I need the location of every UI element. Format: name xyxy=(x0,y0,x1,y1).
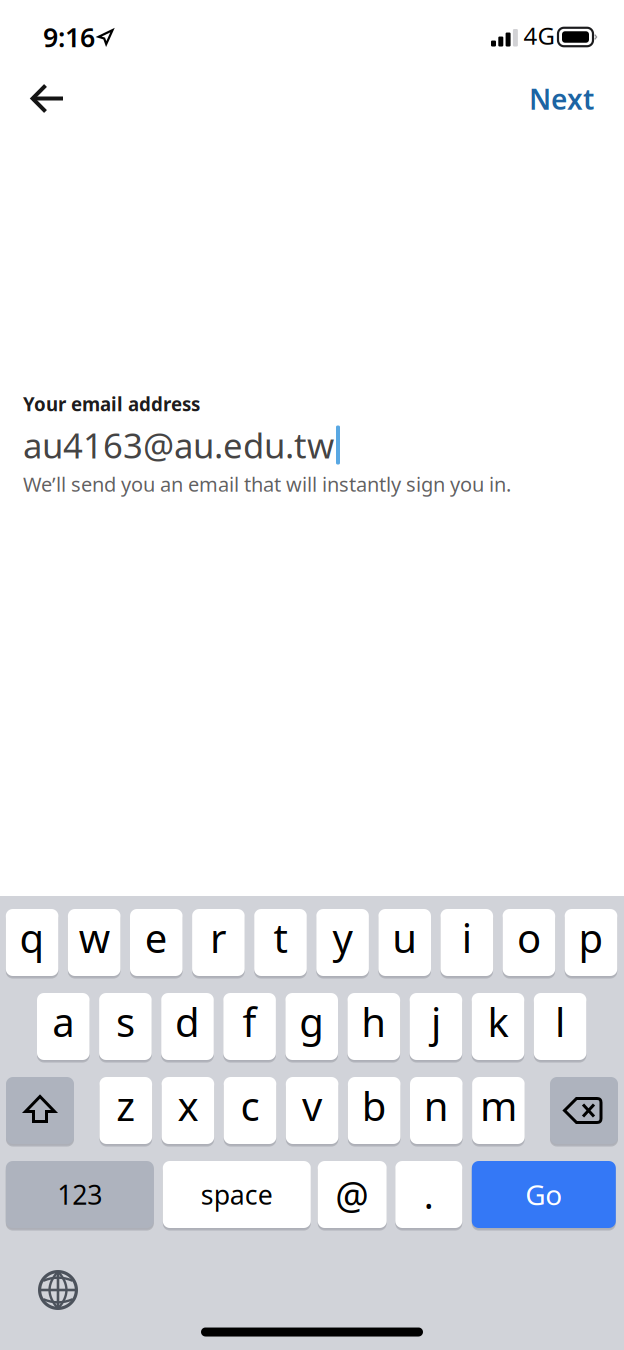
button[interactable]: k xyxy=(472,993,524,1060)
staticText: Go xyxy=(525,1176,562,1213)
staticText: b xyxy=(362,1079,387,1132)
staticText: @ xyxy=(335,1170,369,1219)
button[interactable]: s xyxy=(99,993,152,1060)
staticText: c xyxy=(240,1079,259,1132)
button[interactable]: Go xyxy=(472,1161,616,1228)
staticText: f xyxy=(243,995,257,1048)
staticText: z xyxy=(116,1079,135,1132)
staticText: t xyxy=(273,911,287,964)
staticText: Your email address xyxy=(23,392,200,416)
staticText: 9:16 xyxy=(43,19,95,55)
staticText: au4163@au.edu.tw xyxy=(23,422,334,468)
button[interactable]: Delete xyxy=(550,1077,618,1144)
staticText: k xyxy=(487,995,508,1048)
staticText: r xyxy=(210,911,227,964)
staticText: q xyxy=(20,911,45,964)
button[interactable]: . xyxy=(395,1161,462,1228)
staticText: Next xyxy=(529,80,594,118)
staticText: e xyxy=(145,911,168,964)
staticText: a xyxy=(52,995,74,1048)
button[interactable]: e xyxy=(130,909,183,976)
button[interactable]: i xyxy=(440,909,493,976)
button[interactable]: @ xyxy=(318,1161,387,1228)
staticText: d xyxy=(175,995,200,1048)
button[interactable]: 123 xyxy=(6,1161,154,1228)
staticText: . xyxy=(424,1170,434,1219)
button[interactable]: j xyxy=(410,993,462,1060)
staticText: i xyxy=(462,911,472,964)
button[interactable]: p xyxy=(565,909,617,976)
staticText: 123 xyxy=(57,1177,102,1212)
staticText: v xyxy=(302,1079,322,1132)
button[interactable]: b xyxy=(348,1077,400,1144)
staticText: l xyxy=(555,995,565,1048)
button[interactable]: space xyxy=(163,1161,311,1228)
staticText: j xyxy=(431,995,441,1048)
button[interactable]: Next xyxy=(474,73,594,125)
button[interactable]: g xyxy=(285,993,338,1060)
button[interactable]: t xyxy=(254,909,307,976)
staticText: o xyxy=(517,911,541,964)
staticText: m xyxy=(480,1079,517,1132)
button[interactable]: x xyxy=(162,1077,214,1144)
button[interactable]: u xyxy=(378,909,431,976)
staticText: n xyxy=(424,1079,449,1132)
button[interactable]: Shift xyxy=(6,1077,74,1144)
button[interactable]: d xyxy=(161,993,214,1060)
staticText: h xyxy=(361,995,386,1048)
button[interactable]: a xyxy=(37,993,90,1060)
button[interactable]: w xyxy=(68,909,120,976)
button[interactable]: Back xyxy=(13,70,83,126)
button[interactable]: o xyxy=(503,909,555,976)
staticText: space xyxy=(201,1177,273,1212)
button[interactable]: y xyxy=(316,909,369,976)
button[interactable]: m xyxy=(472,1077,525,1144)
button[interactable]: z xyxy=(99,1077,152,1144)
staticText: w xyxy=(79,911,110,964)
staticText: s xyxy=(116,995,135,1048)
staticText: g xyxy=(299,995,324,1048)
staticText: x xyxy=(177,1079,198,1132)
staticText: p xyxy=(578,911,603,964)
button[interactable]: n xyxy=(410,1077,463,1144)
staticText: y xyxy=(333,911,353,964)
button[interactable]: c xyxy=(224,1077,276,1144)
button[interactable]: v xyxy=(286,1077,338,1144)
button[interactable]: q xyxy=(6,909,58,976)
button[interactable]: Next keyboard xyxy=(30,1262,86,1318)
button[interactable]: r xyxy=(192,909,245,976)
button[interactable]: h xyxy=(347,993,400,1060)
button[interactable]: l xyxy=(534,993,586,1060)
staticText: u xyxy=(392,911,417,964)
button[interactable]: f xyxy=(223,993,276,1060)
staticText: We’ll send you an email that will instan… xyxy=(23,471,511,497)
staticText: 4G xyxy=(523,20,554,51)
